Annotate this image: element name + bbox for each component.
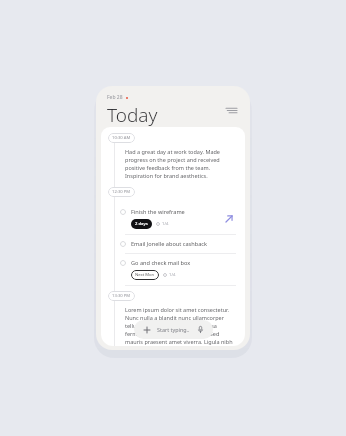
- button[interactable]: Open task: [222, 212, 236, 226]
- staticText: 12:30 PM: [112, 189, 131, 195]
- staticText: Finish the wireframe: [131, 208, 185, 216]
- button[interactable]: Finish the wireframe: [101, 203, 245, 234]
- staticText: Had a great day at work today. Made prog…: [125, 148, 234, 180]
- other: Voice input: [196, 325, 205, 334]
- button[interactable]: Add: [134, 320, 213, 339]
- staticText: Start typing..: [157, 326, 190, 333]
- other: Add: [142, 325, 151, 334]
- staticText: Email Jonelle about cashback: [131, 240, 207, 248]
- button[interactable]: Go and check mail box: [101, 254, 245, 285]
- staticText: Feb 28: [107, 94, 123, 101]
- staticText: 2 days: [135, 221, 148, 227]
- staticText: 13:30 PM: [112, 293, 131, 299]
- staticText: Go and check mail box: [131, 259, 191, 267]
- staticText: Today: [107, 102, 158, 127]
- button[interactable]: Email Jonelle about cashback: [101, 235, 245, 253]
- staticText: Next Mon: [135, 272, 155, 278]
- staticText: 1/4: [169, 272, 176, 278]
- staticText: 10:30 AM: [112, 135, 131, 141]
- staticText: 1/4: [162, 221, 169, 227]
- staticText: Lorem ipsum dolor sit amet consectetur. …: [125, 306, 234, 346]
- button[interactable]: Menu: [222, 101, 240, 119]
